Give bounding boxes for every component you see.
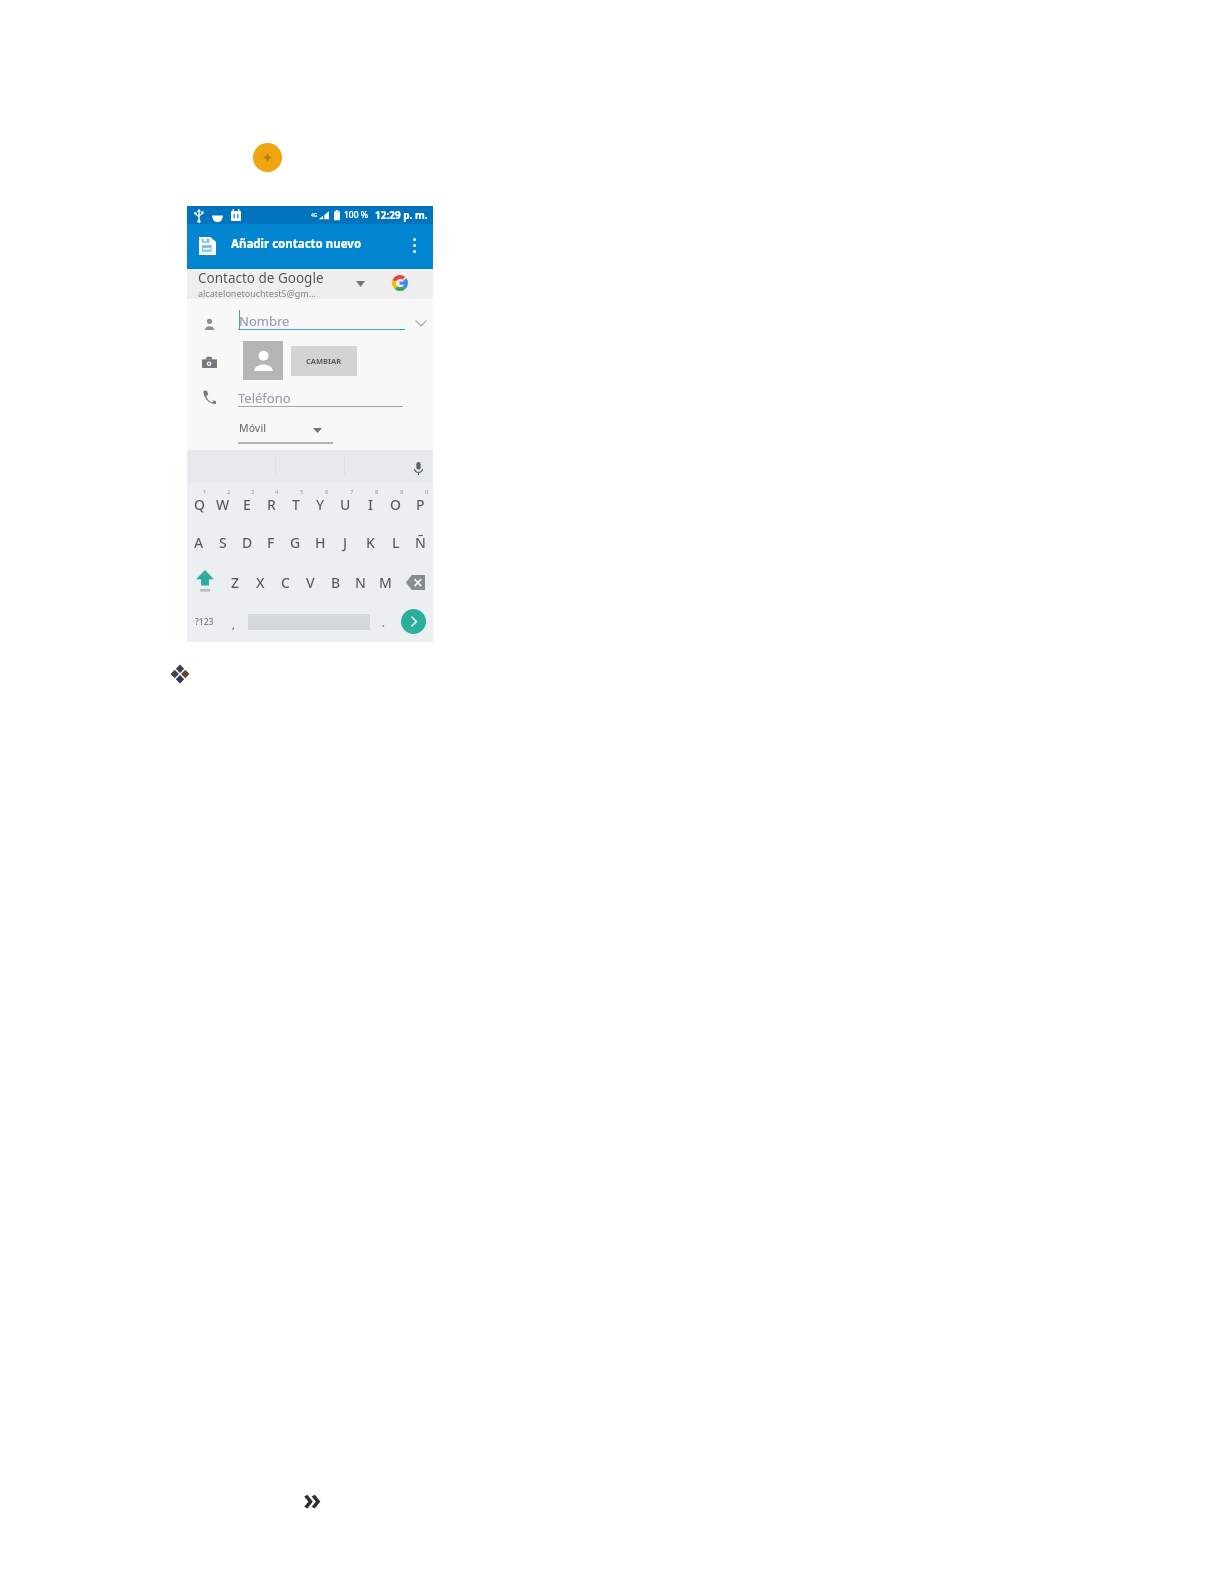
staticText: V — [306, 573, 315, 592]
button[interactable]: ?123 — [187, 602, 222, 642]
button[interactable]: Enter — [393, 602, 433, 642]
button[interactable]: Z — [223, 562, 248, 602]
staticText: Nombre — [239, 312, 290, 330]
staticText: Añadir contacto nuevo — [231, 236, 362, 252]
button[interactable]: Backspace — [398, 562, 433, 602]
staticText: E — [243, 495, 251, 514]
staticText: D — [242, 533, 253, 552]
staticText: A — [194, 533, 204, 552]
staticText: 12:29 p. m. — [375, 208, 428, 222]
button[interactable]: Contacto de Google — [187, 269, 433, 299]
staticText: Teléfono — [238, 389, 291, 407]
staticText: U — [340, 495, 351, 514]
staticText: 8 — [375, 488, 379, 496]
button[interactable]: Save contact — [198, 236, 217, 255]
button[interactable]: 6 — [308, 483, 333, 522]
button[interactable]: S — [211, 522, 235, 562]
staticText: 3 — [251, 488, 255, 496]
button[interactable]: F — [259, 522, 283, 562]
button[interactable]: Voice input — [408, 458, 428, 478]
button[interactable]: H — [308, 522, 333, 562]
staticText: 100 % — [344, 209, 369, 221]
staticText: Z — [231, 573, 240, 592]
staticText: 4G — [311, 212, 318, 219]
button[interactable]: J — [333, 522, 358, 562]
staticText: , — [232, 618, 235, 632]
button[interactable]: B — [323, 562, 348, 602]
button[interactable]: K — [358, 522, 383, 562]
staticText: Contacto de Google — [198, 269, 324, 287]
staticText: L — [392, 533, 400, 552]
button[interactable]: 1 — [187, 483, 211, 522]
staticText: I — [368, 495, 373, 514]
staticText: 4 — [275, 488, 279, 496]
staticText: T — [292, 495, 300, 514]
staticText: Y — [316, 495, 325, 514]
staticText: S — [219, 533, 227, 552]
staticText: » — [303, 1478, 322, 1519]
button[interactable]: CAMBIAR — [291, 346, 357, 376]
button[interactable]: 3 — [235, 483, 259, 522]
button[interactable]: Step bullet — [253, 143, 282, 172]
staticText: J — [343, 533, 348, 552]
staticText: H — [315, 533, 326, 552]
button[interactable]: Space — [245, 602, 373, 642]
button[interactable]: 9 — [383, 483, 408, 522]
staticText: ?123 — [195, 616, 214, 628]
staticText: M — [379, 573, 392, 592]
button[interactable]: D — [235, 522, 259, 562]
staticText: 7 — [350, 488, 354, 496]
button[interactable]: N — [348, 562, 373, 602]
staticText: G — [290, 533, 301, 552]
button[interactable]: Móvil — [239, 421, 267, 435]
staticText: 1 — [203, 488, 207, 496]
staticText: 9 — [400, 488, 404, 496]
staticText: K — [366, 533, 375, 552]
staticText: N — [355, 573, 366, 592]
button[interactable]: C — [273, 562, 298, 602]
staticText: alcatelonetouchtest5@gm… — [198, 287, 316, 299]
button[interactable]: L — [383, 522, 408, 562]
button[interactable]: 5 — [283, 483, 308, 522]
button[interactable]: A — [187, 522, 211, 562]
button[interactable]: Ñ — [408, 522, 433, 562]
button[interactable]: 7 — [333, 483, 358, 522]
button[interactable]: X — [248, 562, 273, 602]
button[interactable]: M — [373, 562, 398, 602]
button[interactable]: 8 — [358, 483, 383, 522]
button[interactable]: , — [222, 602, 245, 642]
button[interactable]: More options — [404, 235, 424, 255]
button[interactable]: Expand name fields — [416, 321, 426, 326]
button[interactable]: Contact photo — [243, 341, 283, 380]
staticText: CAMBIAR — [306, 356, 342, 366]
staticText: C — [281, 573, 290, 592]
staticText: Ñ — [415, 533, 426, 552]
button[interactable]: Shift — [187, 562, 223, 602]
staticText: Q — [194, 495, 205, 514]
staticText: P — [416, 495, 425, 514]
staticText: 0 — [425, 488, 429, 496]
staticText: 2 — [227, 488, 231, 496]
staticText: O — [390, 495, 401, 514]
button[interactable]: 0 — [408, 483, 433, 522]
staticText: 6 — [325, 488, 329, 496]
staticText: X — [256, 573, 265, 592]
staticText: B — [331, 573, 341, 592]
button[interactable]: G — [283, 522, 308, 562]
staticText: R — [267, 495, 276, 514]
staticText: 5 — [300, 488, 304, 496]
staticText: W — [216, 495, 230, 514]
staticText: . — [382, 616, 385, 630]
button[interactable]: 2 — [211, 483, 235, 522]
staticText: F — [267, 533, 275, 552]
button[interactable]: . — [373, 602, 393, 642]
button[interactable]: 4 — [259, 483, 283, 522]
button[interactable]: V — [298, 562, 323, 602]
